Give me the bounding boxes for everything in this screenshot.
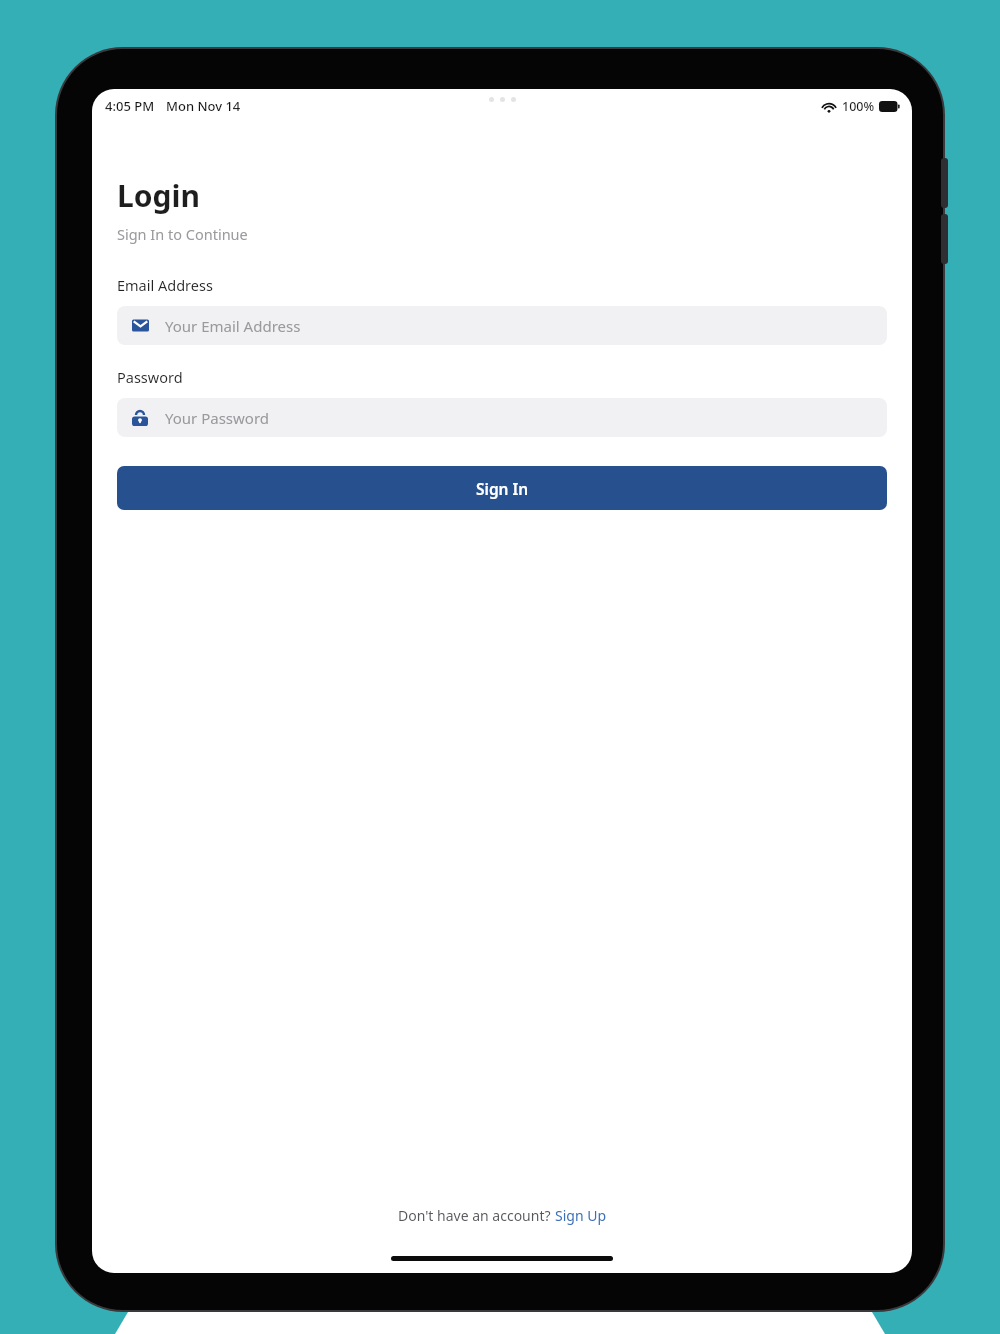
other: Email (132, 317, 149, 334)
staticText: Mon Nov 14 (166, 97, 241, 115)
staticText: Don't have an account? (398, 1206, 555, 1225)
staticText: 100% (842, 98, 875, 115)
staticText: Sign Up (555, 1206, 607, 1225)
button[interactable]: Sign In (117, 466, 887, 510)
staticText: Your Email Address (165, 316, 301, 336)
staticText: Login (117, 175, 200, 216)
staticText: Password (117, 367, 183, 387)
staticText: Sign In (476, 478, 529, 499)
other: Password (132, 410, 148, 426)
button[interactable]: Sign Up (555, 1206, 607, 1225)
button[interactable]: Email (117, 306, 887, 345)
staticText: 4:05 PM (105, 97, 155, 115)
button[interactable]: Password (117, 398, 887, 437)
staticText: Your Password (165, 408, 270, 428)
staticText: Email Address (117, 275, 213, 295)
staticText: Sign In to Continue (117, 224, 248, 244)
